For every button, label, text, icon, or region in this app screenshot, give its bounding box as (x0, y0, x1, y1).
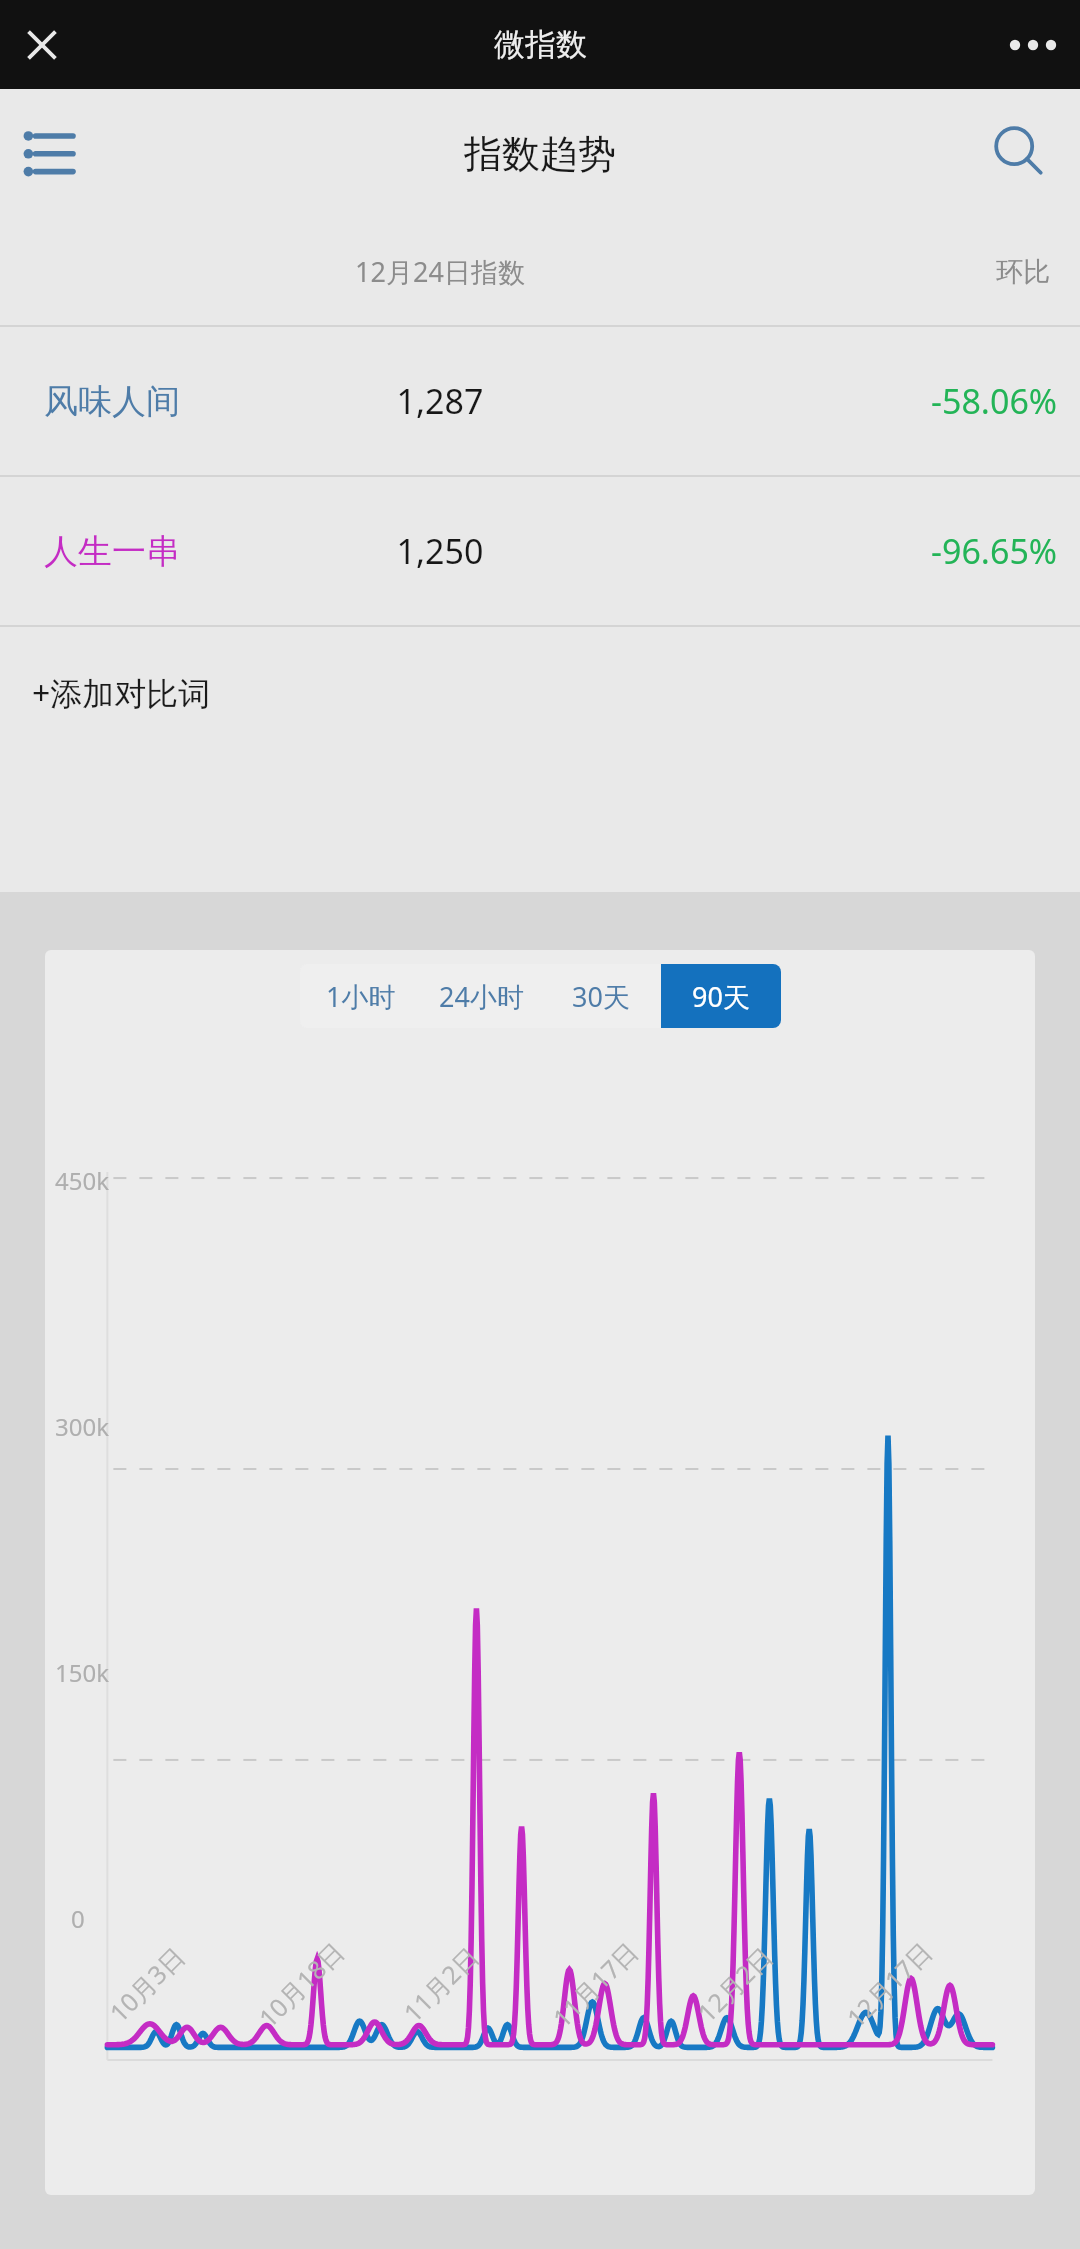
staticText: 90天 (692, 978, 750, 1015)
button[interactable]: 90天 (661, 964, 781, 1028)
staticText: 11月2日 (396, 1939, 485, 2029)
staticText: 1,287 (270, 378, 610, 424)
staticText: 0 (71, 1902, 85, 1935)
staticText: 风味人间 (44, 380, 270, 423)
button[interactable]: 24小时 (421, 964, 541, 1028)
button[interactable]: 人生一串 (0, 477, 1080, 625)
staticText: 10月3日 (102, 1939, 191, 2029)
button[interactable]: Search (974, 109, 1064, 199)
staticText: 人生一串 (44, 530, 270, 573)
staticText: 微指数 (494, 25, 587, 64)
staticText: 1,250 (270, 528, 610, 574)
button[interactable]: +添加对比词 (0, 627, 1080, 759)
staticText: 300k (55, 1410, 109, 1443)
staticText: 450k (55, 1164, 109, 1197)
button[interactable]: 风味人间 (0, 327, 1080, 475)
button[interactable]: Close (10, 13, 74, 77)
staticText: 11月17日 (545, 1934, 645, 2034)
staticText: 1小时 (326, 978, 396, 1015)
staticText: 10月18日 (251, 1934, 351, 2034)
staticText: 12月24日指数 (270, 253, 610, 290)
button[interactable]: More options (998, 10, 1068, 80)
button[interactable]: 1小时 (300, 964, 421, 1028)
staticText: -96.65% (931, 528, 1058, 574)
staticText: -58.06% (931, 378, 1058, 424)
staticText: 24小时 (439, 978, 524, 1015)
staticText: 30天 (572, 978, 630, 1015)
staticText: 指数趋势 (464, 130, 616, 178)
staticText: 150k (55, 1656, 109, 1689)
staticText: 12月17日 (839, 1934, 939, 2034)
staticText: +添加对比词 (32, 671, 211, 715)
button[interactable]: 30天 (541, 964, 661, 1028)
staticText: 12月2日 (690, 1939, 779, 2029)
button[interactable]: List view (8, 113, 90, 195)
staticText: 环比 (996, 255, 1050, 289)
